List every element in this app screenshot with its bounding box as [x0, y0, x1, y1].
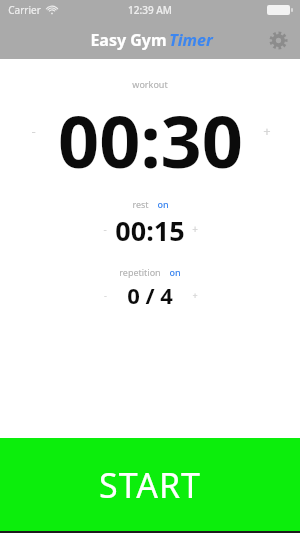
- button[interactable]: Decrease: [88, 212, 122, 246]
- staticText: -: [31, 122, 36, 140]
- staticText: +: [263, 122, 271, 140]
- staticText: workout: [132, 78, 168, 90]
- staticText: 00:30: [58, 91, 243, 171]
- staticText: 0 / 4: [127, 280, 173, 310]
- staticText: 00:15: [115, 212, 185, 246]
- staticText: -: [104, 289, 107, 301]
- button[interactable]: Settings: [264, 26, 292, 54]
- button[interactable]: Increase: [178, 212, 212, 246]
- staticText: +: [192, 222, 198, 236]
- staticText: -: [103, 222, 107, 236]
- staticText: Easy Gym: [88, 29, 169, 51]
- staticText: rest: [132, 198, 149, 210]
- button[interactable]: on: [169, 266, 181, 278]
- button[interactable]: Increase: [250, 114, 284, 148]
- staticText: Carrier: [8, 3, 41, 17]
- staticText: +: [192, 289, 198, 301]
- staticText: START: [99, 462, 201, 508]
- staticText: 12:39 AM: [128, 3, 172, 17]
- staticText: Timer: [169, 29, 213, 51]
- staticText: repetition: [119, 266, 161, 278]
- staticText: on: [157, 198, 169, 210]
- staticText: on: [169, 266, 181, 278]
- button[interactable]: START: [0, 438, 300, 531]
- button[interactable]: on: [157, 198, 169, 210]
